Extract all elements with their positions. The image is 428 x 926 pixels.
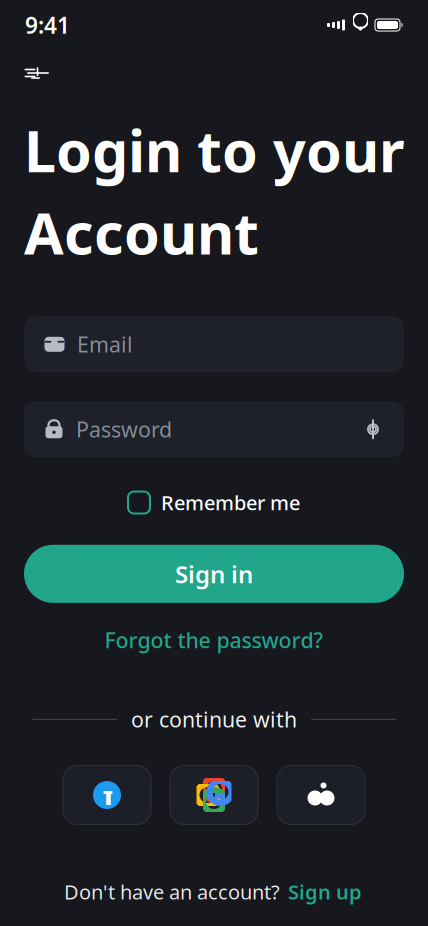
staticText: Sign in [175,558,253,590]
button[interactable]: Remember me [122,483,306,522]
staticText: Login to your [24,112,405,188]
staticText: Don't have an account? [64,878,280,905]
button[interactable]: Show password [356,412,390,446]
staticText: or continue with [131,705,297,733]
staticText: Sign up [288,878,362,905]
button[interactable]: Facebook [63,765,151,824]
staticText: Account [24,194,259,270]
button[interactable]: Forgot the password? [94,621,333,659]
button[interactable]: Sign up [286,874,364,909]
staticText: Remember me [161,489,300,516]
button[interactable]: Back [16,51,60,95]
staticText: Forgot the password? [104,626,323,654]
button[interactable]: Google [170,765,258,824]
staticText: Email [77,330,133,358]
button[interactable]: Apple [277,765,365,824]
staticText: Password [76,415,172,443]
button[interactable]: Sign in [24,545,404,603]
staticText: 9:41 [25,10,70,40]
